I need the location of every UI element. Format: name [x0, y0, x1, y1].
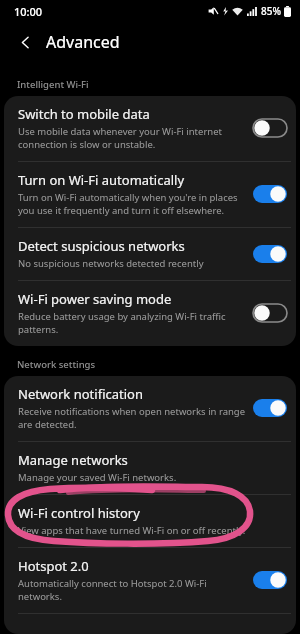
staticText: Hotspot 2.0 — [18, 557, 89, 575]
staticText: 10:00 — [14, 4, 43, 19]
button[interactable]: Network notification — [4, 376, 296, 441]
button[interactable]: Manage networks — [4, 442, 296, 494]
staticText: Detect suspicious networks — [18, 237, 185, 255]
button[interactable]: Install network certificates — [4, 614, 296, 634]
button[interactable]: Toggle off — [253, 119, 287, 137]
button[interactable]: Back — [11, 28, 39, 56]
staticText: No suspicious networks detected recently — [18, 257, 204, 270]
staticText: Switch to mobile data — [18, 105, 150, 123]
staticText: Turn on Wi-Fi automatically when you're … — [18, 191, 238, 217]
staticText: View apps that have turned Wi-Fi on or o… — [18, 524, 246, 537]
staticText: Turn on Wi-Fi automatically — [18, 171, 185, 189]
button[interactable]: Toggle on — [253, 571, 287, 589]
button[interactable]: Toggle on — [253, 245, 287, 263]
staticText: Use mobile data whenever your Wi-Fi inte… — [18, 125, 222, 151]
button[interactable]: Toggle on — [253, 399, 287, 417]
staticText: Manage networks — [18, 451, 128, 469]
button[interactable]: Switch to mobile data — [4, 96, 296, 161]
button[interactable]: Turn on Wi-Fi automatically — [4, 162, 296, 227]
staticText: Network settings — [17, 358, 96, 371]
button[interactable]: Toggle off — [253, 304, 287, 322]
button[interactable]: Toggle on — [253, 185, 287, 203]
staticText: Receive notifications when open networks… — [18, 405, 246, 431]
staticText: Reduce battery usage by analyzing Wi-Fi … — [18, 310, 226, 336]
staticText: Manage your saved Wi-Fi networks. — [18, 471, 177, 484]
staticText: Advanced — [46, 31, 120, 53]
button[interactable]: Detect suspicious networks — [4, 228, 296, 280]
button[interactable]: Wi-Fi control history — [4, 495, 296, 547]
staticText: Wi-Fi power saving mode — [18, 290, 172, 308]
staticText: Network notification — [18, 385, 143, 403]
staticText: 85% — [261, 4, 281, 18]
staticText: Automatically connect to Hotspot 2.0 Wi-… — [18, 577, 207, 603]
staticText: Wi-Fi control history — [18, 504, 140, 522]
button[interactable]: Wi-Fi power saving mode — [4, 281, 296, 346]
staticText: Intelligent Wi-Fi — [17, 78, 89, 91]
button[interactable]: Hotspot 2.0 — [4, 548, 296, 613]
